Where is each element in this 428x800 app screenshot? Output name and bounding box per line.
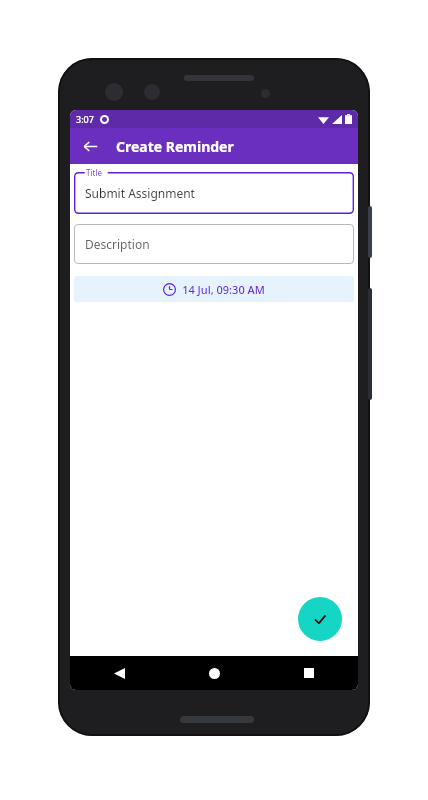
button[interactable]: Save reminder [298, 597, 342, 641]
button[interactable]: Back [77, 133, 103, 159]
staticText: 14 Jul, 09:30 AM [182, 282, 265, 297]
staticText: Description [85, 236, 150, 252]
staticText: Create Reminder [116, 137, 234, 156]
button[interactable]: Back [104, 658, 134, 688]
button[interactable]: Submit Assignment [74, 172, 354, 214]
button[interactable]: 14 Jul, 09:30 AM [74, 276, 354, 302]
button[interactable]: Home [199, 658, 229, 688]
button[interactable]: Description [74, 224, 354, 264]
staticText: Submit Assignment [85, 185, 195, 201]
staticText: 3:07 [76, 113, 94, 125]
staticText: Title [86, 167, 102, 178]
button[interactable]: Recent apps [294, 658, 324, 688]
